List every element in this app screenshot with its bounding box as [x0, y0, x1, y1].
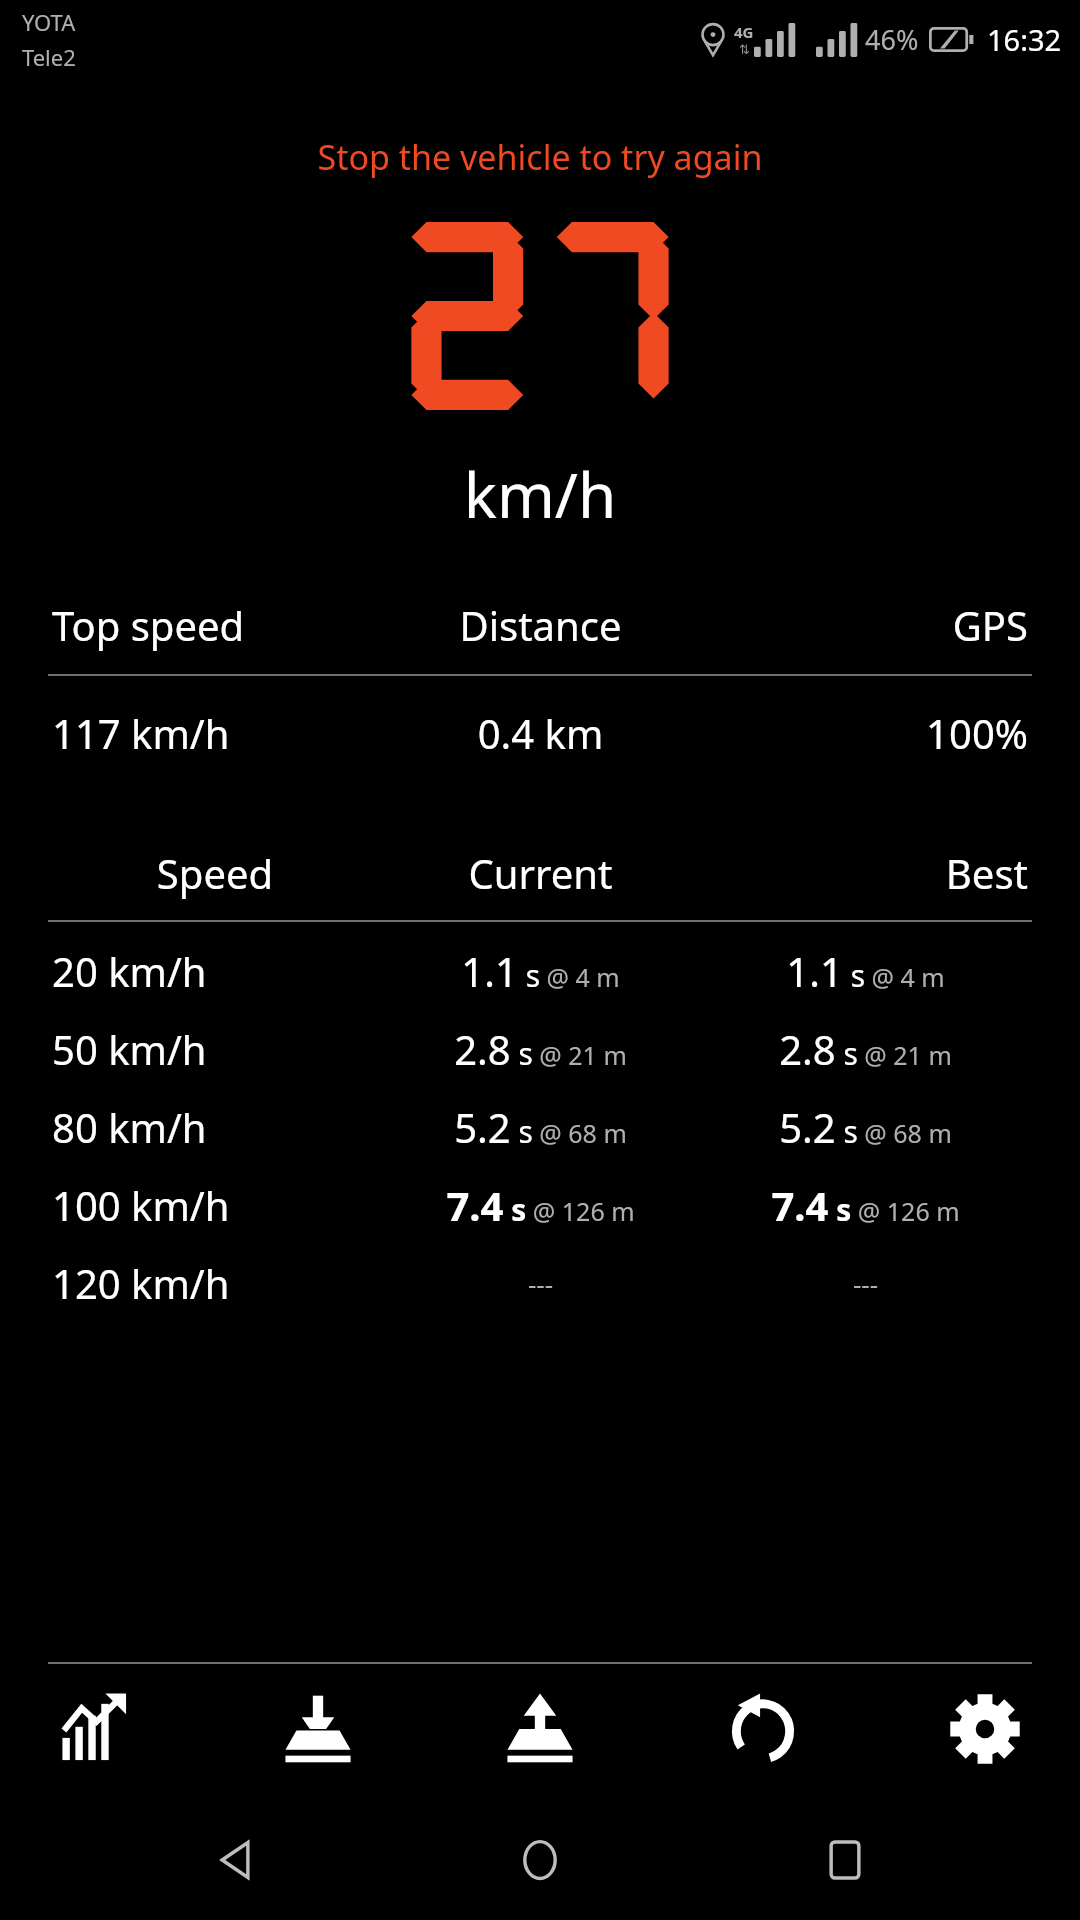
staticText: 46% [865, 21, 919, 58]
staticText: 50 km/h [52, 1022, 378, 1076]
staticText: --- [378, 1266, 703, 1301]
staticText: 80 km/h [52, 1100, 378, 1154]
button[interactable]: Statistics [40, 1674, 150, 1784]
staticText: 117 km/h [52, 706, 378, 760]
button[interactable]: 80 km/h [0, 1088, 1080, 1166]
staticText: 1.1 s @ 4 m [703, 944, 1028, 998]
staticText: YOTA [22, 7, 76, 37]
staticText: Tele2 [22, 42, 76, 72]
button[interactable]: 20 km/h [0, 932, 1080, 1010]
staticText: 20 km/h [52, 944, 378, 998]
staticText: Top speed [52, 598, 378, 652]
staticText: km/h [0, 452, 1080, 536]
staticText: GPS [703, 598, 1028, 652]
staticText: 5.2 s @ 68 m [378, 1100, 703, 1154]
button[interactable]: Export [485, 1674, 595, 1784]
staticText: 1.1 s @ 4 m [378, 944, 703, 998]
staticText: Current [378, 846, 703, 900]
staticText: 100 km/h [52, 1178, 378, 1232]
staticText: 0.4 km [378, 706, 703, 760]
staticText: 7.4 s @ 126 m [703, 1178, 1028, 1232]
staticText: Speed [52, 846, 378, 900]
button[interactable]: 50 km/h [0, 1010, 1080, 1088]
staticText: ⇅ [739, 42, 750, 57]
staticText: Distance [378, 598, 703, 652]
button[interactable]: Back [165, 1805, 305, 1915]
staticText: 7.4 s @ 126 m [378, 1178, 703, 1232]
button[interactable]: Settings [930, 1674, 1040, 1784]
button[interactable]: Recent apps [775, 1805, 915, 1915]
staticText: Best [703, 846, 1028, 900]
staticText: 100% [703, 706, 1028, 760]
staticText: --- [703, 1266, 1028, 1301]
other: Location [698, 22, 728, 58]
staticText: 120 km/h [52, 1256, 378, 1310]
other: Battery [929, 27, 975, 52]
button[interactable]: Stop the vehicle to try again [0, 134, 1080, 180]
button[interactable]: Import [263, 1674, 373, 1784]
staticText: 16:32 [987, 20, 1062, 59]
staticText: 2.8 s @ 21 m [703, 1022, 1028, 1076]
staticText: 5.2 s @ 68 m [703, 1100, 1028, 1154]
button[interactable]: 100 km/h [0, 1166, 1080, 1244]
staticText: 4G [734, 22, 754, 42]
button[interactable]: 120 km/h [0, 1244, 1080, 1322]
button[interactable]: Reset [708, 1674, 818, 1784]
button[interactable]: Home [470, 1805, 610, 1915]
staticText: 2.8 s @ 21 m [378, 1022, 703, 1076]
